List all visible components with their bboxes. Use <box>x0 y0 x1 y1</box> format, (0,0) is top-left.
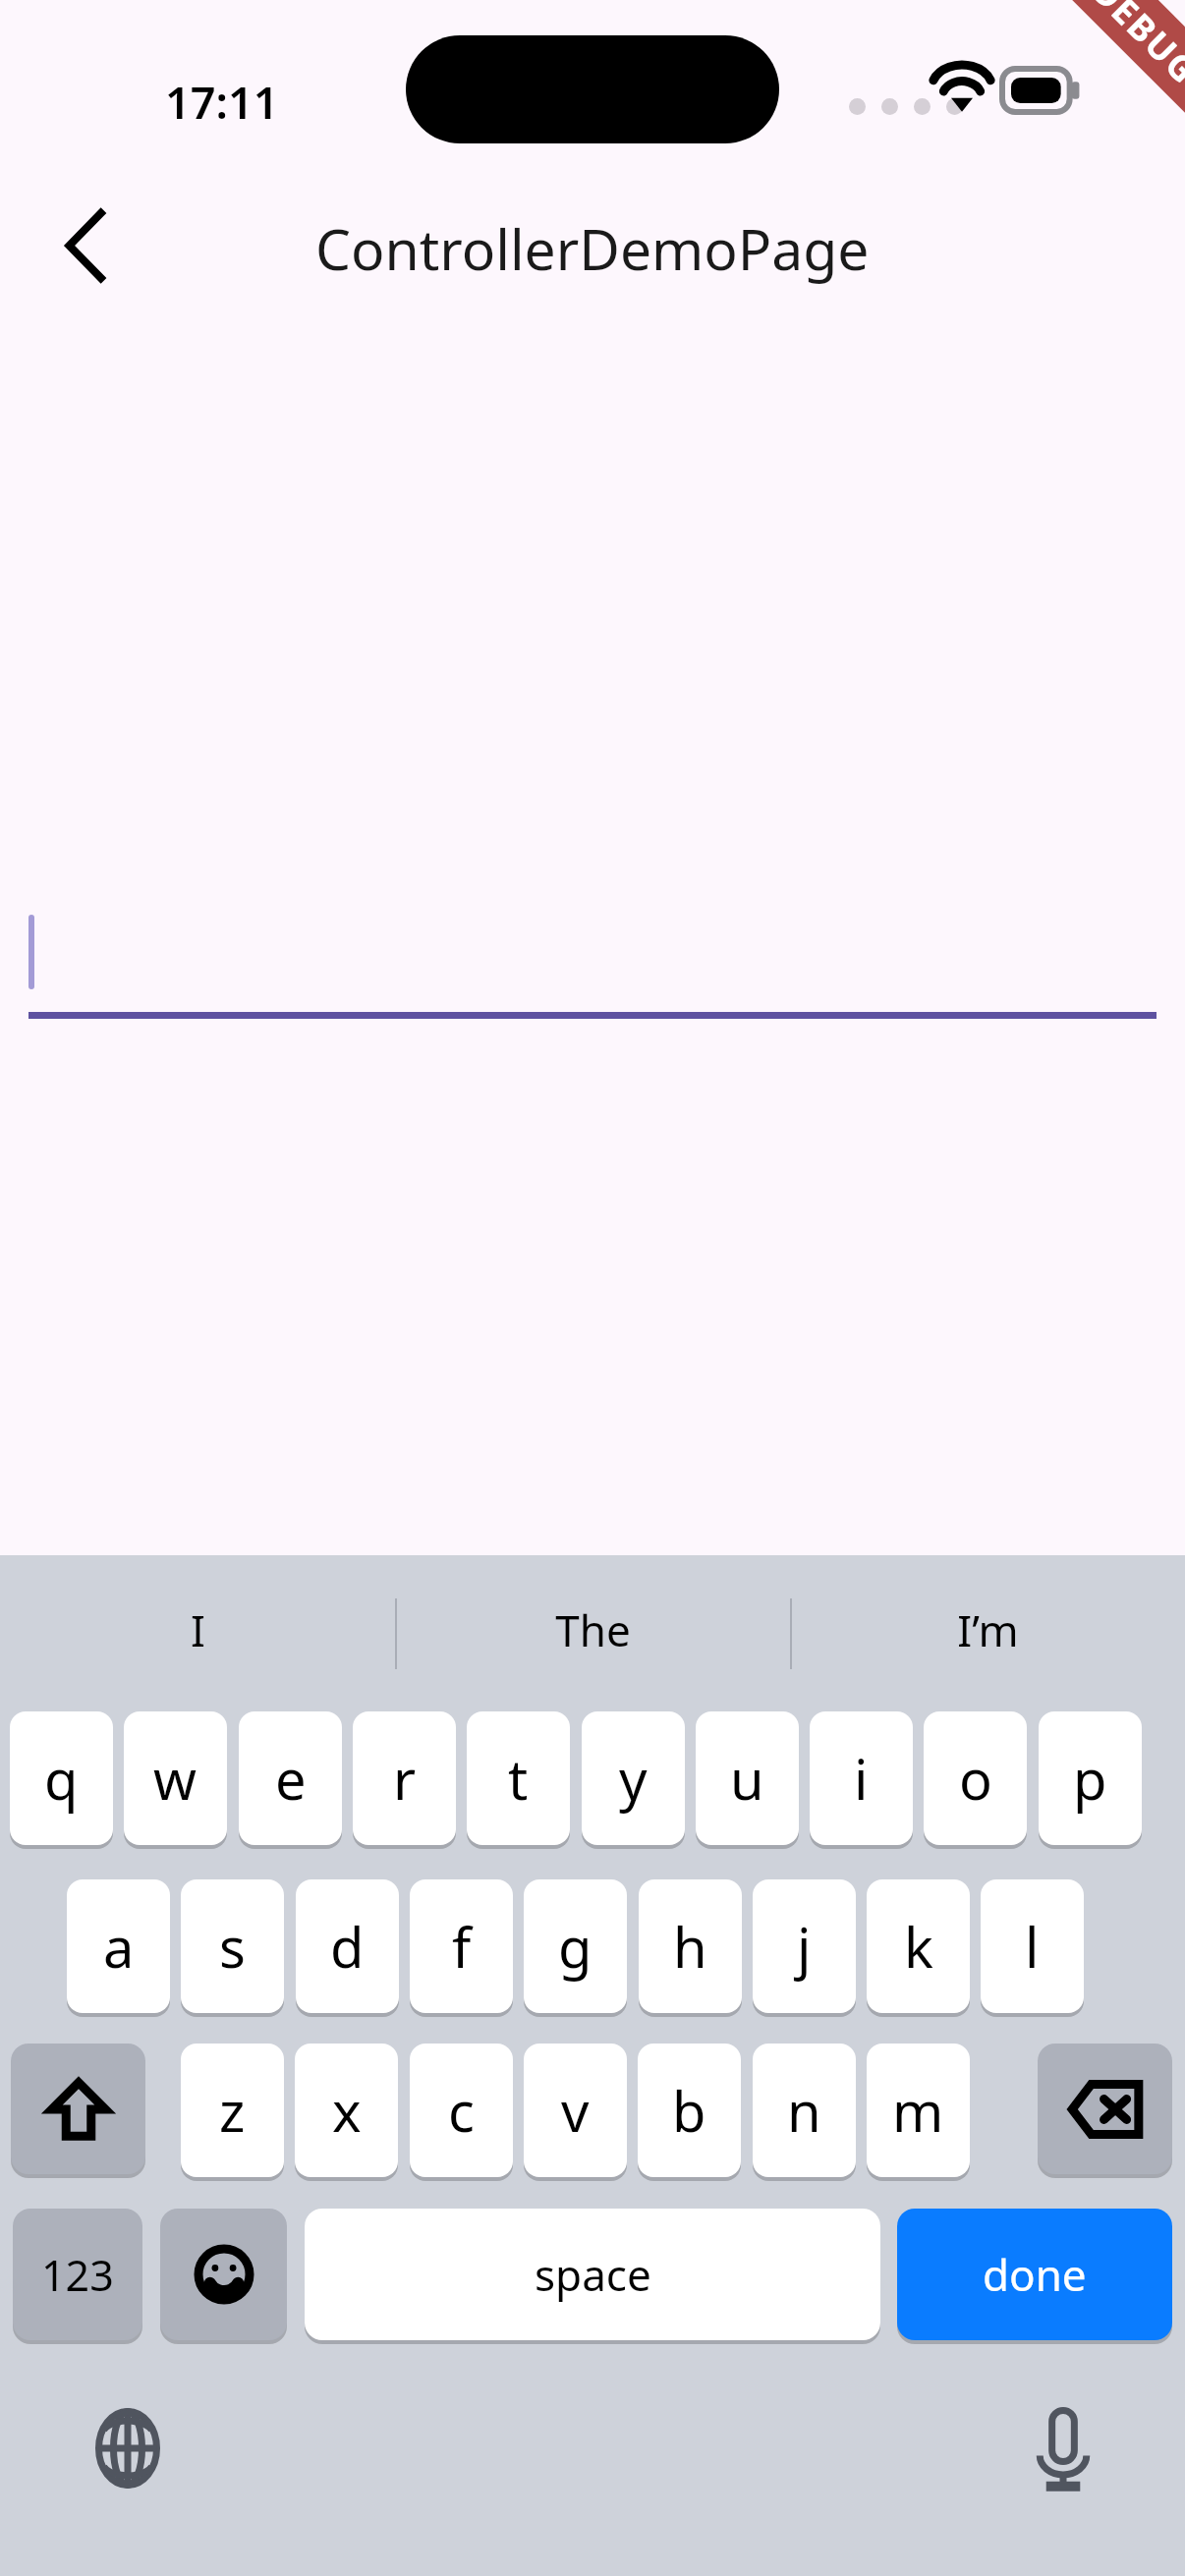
button[interactable]: Voice input <box>1010 2395 1116 2501</box>
staticText: g <box>558 1909 592 1984</box>
button[interactable]: m <box>867 2044 970 2177</box>
staticText: r <box>393 1741 417 1816</box>
staticText: DEBUG <box>1082 0 1185 94</box>
button[interactable]: g <box>524 1879 627 2013</box>
staticText: l <box>1025 1909 1040 1984</box>
staticText: p <box>1073 1741 1107 1816</box>
button[interactable]: I’m <box>790 1555 1185 1705</box>
staticText: c <box>448 2073 475 2148</box>
button[interactable]: Change keyboard language <box>75 2395 181 2501</box>
staticText: x <box>332 2073 362 2148</box>
button[interactable]: j <box>753 1879 856 2013</box>
staticText: b <box>672 2073 706 2148</box>
button[interactable]: a <box>67 1879 170 2013</box>
staticText: j <box>797 1909 812 1984</box>
button[interactable]: t <box>467 1711 570 1845</box>
staticText: y <box>619 1741 648 1816</box>
button[interactable]: s <box>181 1879 284 2013</box>
button[interactable] <box>0 904 1185 1022</box>
button[interactable]: done <box>897 2209 1172 2340</box>
staticText: o <box>959 1741 992 1816</box>
button[interactable]: n <box>753 2044 856 2177</box>
staticText: I’m <box>957 1600 1019 1659</box>
staticText: a <box>103 1909 135 1984</box>
staticText: i <box>854 1741 869 1816</box>
staticText: s <box>219 1909 246 1984</box>
button[interactable]: Shift <box>11 2044 145 2174</box>
button[interactable]: b <box>638 2044 741 2177</box>
staticText: The <box>555 1600 631 1659</box>
staticText: h <box>673 1909 707 1984</box>
staticText: 123 <box>41 2246 114 2304</box>
button[interactable]: Emoji <box>160 2209 287 2340</box>
button[interactable]: c <box>410 2044 513 2177</box>
staticText: e <box>275 1741 307 1816</box>
button[interactable]: Back <box>28 187 145 305</box>
staticText: space <box>535 2245 651 2304</box>
button[interactable]: z <box>181 2044 284 2177</box>
button[interactable]: f <box>410 1879 513 2013</box>
button[interactable]: o <box>924 1711 1027 1845</box>
button[interactable]: h <box>639 1879 742 2013</box>
staticText: d <box>330 1909 365 1984</box>
button[interactable]: I <box>0 1555 395 1705</box>
button[interactable]: w <box>124 1711 227 1845</box>
button[interactable]: Numbers <box>13 2209 142 2340</box>
staticText: 17:11 <box>165 72 279 132</box>
button[interactable]: l <box>981 1879 1084 2013</box>
button[interactable]: y <box>582 1711 685 1845</box>
staticText: w <box>153 1741 197 1816</box>
button[interactable]: x <box>295 2044 398 2177</box>
button[interactable]: u <box>696 1711 799 1845</box>
button[interactable]: space <box>305 2209 880 2340</box>
staticText: n <box>787 2073 821 2148</box>
button[interactable]: q <box>10 1711 113 1845</box>
staticText: ControllerDemoPage <box>315 210 870 287</box>
staticText: q <box>44 1741 79 1816</box>
staticText: I <box>191 1600 205 1659</box>
staticText: u <box>730 1741 764 1816</box>
button[interactable]: v <box>524 2044 627 2177</box>
button[interactable]: i <box>810 1711 913 1845</box>
staticText: f <box>452 1909 472 1984</box>
button[interactable]: The <box>395 1555 790 1705</box>
button[interactable]: r <box>353 1711 456 1845</box>
staticText: t <box>508 1741 529 1816</box>
staticText: m <box>892 2073 944 2148</box>
staticText: v <box>561 2073 590 2148</box>
button[interactable]: e <box>239 1711 342 1845</box>
button[interactable]: Backspace <box>1038 2044 1172 2174</box>
staticText: done <box>983 2245 1087 2304</box>
button[interactable]: d <box>296 1879 399 2013</box>
button[interactable]: p <box>1039 1711 1142 1845</box>
button[interactable]: k <box>867 1879 970 2013</box>
staticText: z <box>219 2073 246 2148</box>
staticText: k <box>904 1909 933 1984</box>
